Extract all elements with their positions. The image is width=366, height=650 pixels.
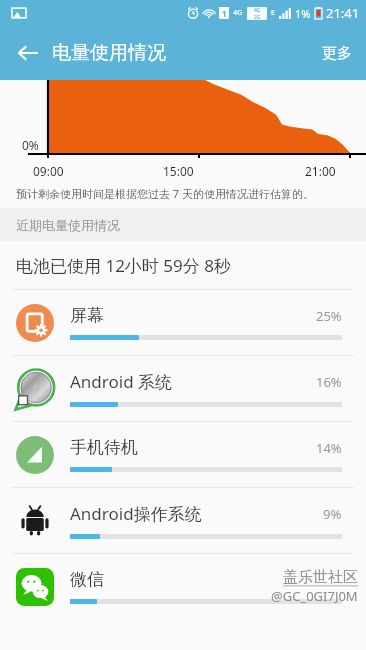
button[interactable]: Android 系统 [0, 356, 366, 421]
staticText: 1 [222, 8, 227, 19]
button[interactable]: 手机待机 [0, 422, 366, 487]
staticText: @GC_0GI7J0M [271, 587, 358, 605]
button[interactable]: 屏幕 [0, 290, 366, 355]
staticText: 14% [316, 439, 342, 457]
staticText: 微信 [70, 569, 104, 590]
staticText: 25% [316, 307, 342, 325]
staticText: 2G [254, 14, 261, 20]
staticText: 21:41 [326, 4, 360, 22]
button[interactable]: 微信 [0, 554, 366, 619]
staticText: 9% [323, 505, 342, 523]
staticText: 手机待机 [70, 437, 316, 458]
staticText: Android操作系统 [70, 502, 323, 525]
staticText: 4G [233, 8, 243, 18]
staticText: 21:00 [305, 163, 336, 179]
button[interactable]: 更多 [308, 34, 366, 73]
button[interactable]: 返回 [8, 33, 48, 73]
staticText: 屏幕 [70, 305, 316, 326]
staticText: Android 系统 [70, 370, 316, 393]
staticText: 16% [316, 373, 342, 391]
staticText: 0% [22, 137, 39, 153]
staticText: 电量使用情况 [52, 41, 166, 65]
staticText: 15:00 [163, 163, 194, 179]
staticText: 更多 [322, 44, 352, 63]
staticText: 4G [254, 7, 261, 14]
staticText: 预计剩余使用时间是根据您过去 7 天的使用情况进行估算的。 [16, 186, 315, 201]
staticText: 盖乐世社区 [283, 568, 358, 587]
staticText: 09:00 [33, 163, 64, 179]
button[interactable]: Android操作系统 [0, 488, 366, 553]
staticText: 1% [295, 6, 311, 21]
staticText: E [271, 8, 275, 18]
staticText: 电池已使用 12小时 59分 8秒 [16, 254, 231, 277]
staticText: 近期电量使用情况 [16, 217, 120, 233]
